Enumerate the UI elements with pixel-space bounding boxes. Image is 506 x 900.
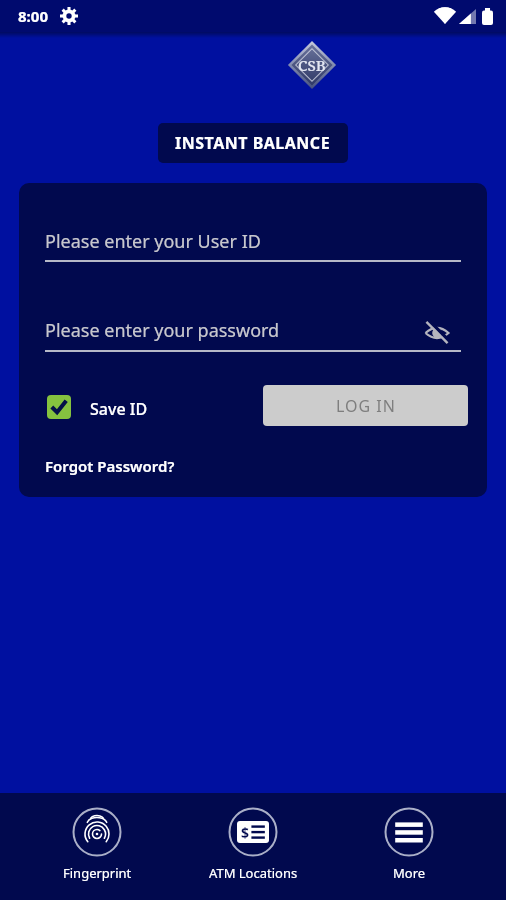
staticText: $ (241, 823, 250, 842)
button[interactable]: LOG IN (263, 385, 468, 426)
button[interactable]: $ (193, 793, 313, 900)
button[interactable] (45, 307, 461, 352)
staticText: Please enter your User ID (45, 229, 261, 254)
staticText: LOG IN (336, 395, 396, 417)
staticText: Save ID (90, 398, 148, 420)
staticText: INSTANT BALANCE (175, 132, 331, 154)
staticText: 8:00 (18, 6, 48, 26)
staticText: CSB (298, 55, 326, 75)
button[interactable] (45, 217, 461, 262)
button[interactable] (47, 395, 71, 419)
staticText: More (393, 864, 426, 882)
staticText: ATM Locations (209, 864, 298, 882)
button[interactable] (425, 321, 449, 345)
staticText: Please enter your password (45, 318, 280, 343)
button[interactable]: Fingerprint (37, 793, 157, 900)
button[interactable]: More (349, 793, 469, 900)
button[interactable]: Forgot Password? (45, 456, 175, 476)
staticText: Fingerprint (63, 864, 132, 882)
button[interactable]: INSTANT BALANCE (158, 123, 348, 163)
